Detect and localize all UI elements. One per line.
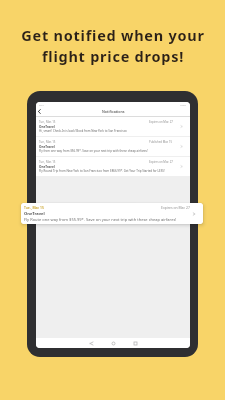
button[interactable]: Back [87, 339, 96, 348]
staticText: Tue., Mar. 15 [39, 120, 56, 124]
staticText: Tue., Mar. 15 [24, 205, 44, 210]
staticText: OneTravel [39, 145, 55, 149]
staticText: Expires on Mar. 27 [149, 160, 173, 164]
staticText: Expires on Mar. 27 [161, 205, 190, 210]
staticText: Get notified when your flight price drop… [21, 25, 205, 66]
button[interactable]: Tue., Mar. 15 [36, 117, 190, 136]
button[interactable]: Recents [131, 339, 140, 348]
staticText: Published Mar. 15 [149, 140, 173, 144]
staticText: 100% [180, 103, 187, 106]
button[interactable]: Home [109, 339, 118, 348]
button[interactable]: Back [36, 108, 43, 115]
staticText: OneTravel [24, 211, 45, 217]
staticText: OneTravel [39, 125, 55, 129]
staticText: Fly Route one way from $55.99*. Save on … [24, 217, 177, 222]
button[interactable]: Tue., Mar. 15 [21, 203, 203, 224]
staticText: Fly Round Trip from New York to San Fran… [39, 169, 165, 173]
button[interactable]: Tue., Mar. 15 [36, 157, 190, 176]
staticText: Hi, smart! Check-In is back! Book from N… [39, 129, 127, 133]
staticText: 9:41 [39, 103, 44, 106]
staticText: Fly from one way from $56.99*. Save on y… [39, 149, 148, 153]
button[interactable]: Tue., Mar. 15 [36, 137, 190, 156]
staticText: Expires on Mar. 27 [149, 120, 173, 124]
staticText: Notifications [102, 109, 125, 114]
staticText: OneTravel [39, 165, 55, 169]
staticText: Tue., Mar. 15 [39, 160, 56, 164]
staticText: Tue., Mar. 15 [39, 140, 56, 144]
